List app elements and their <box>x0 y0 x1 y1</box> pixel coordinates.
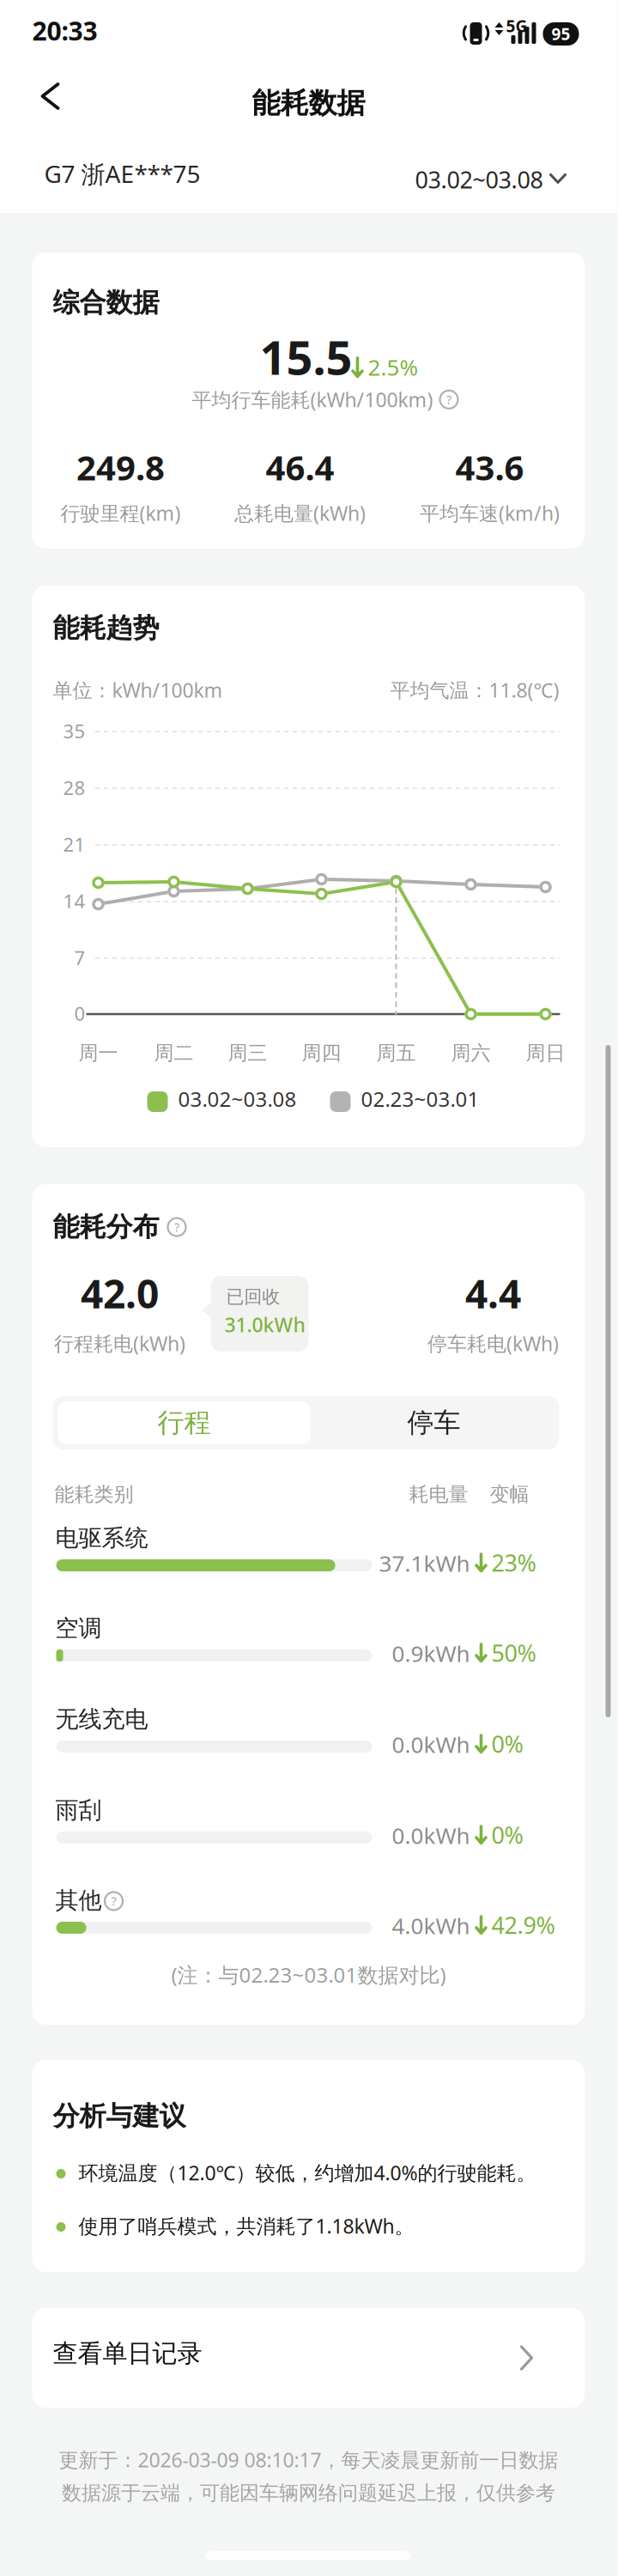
button[interactable]: 停车 <box>312 1401 556 1444</box>
staticText: 5G <box>506 15 527 37</box>
staticText: 20:33 <box>32 14 97 48</box>
staticText: 其他 <box>55 1886 102 1915</box>
staticText: 周三 <box>228 1041 267 1065</box>
staticText: 停车 <box>407 1406 460 1439</box>
staticText: 50% <box>491 1637 536 1668</box>
staticText: 4.4 <box>465 1267 521 1319</box>
staticText: 43.6 <box>455 444 524 490</box>
staticText: 15.5 <box>260 326 352 388</box>
staticText: 37.1kWh <box>379 1548 470 1578</box>
staticText: 数据源于云端，可能因车辆网络问题延迟上报，仅供参考 <box>62 2481 555 2505</box>
staticText: 环境温度（12.0℃）较低，约增加4.0%的行驶能耗。 <box>79 2160 536 2186</box>
staticText: 249.8 <box>76 444 165 490</box>
staticText: 23% <box>491 1547 536 1578</box>
button[interactable]: 03.02~03.08 <box>410 157 571 202</box>
staticText: ? <box>446 392 451 407</box>
staticText: 周日 <box>526 1041 565 1065</box>
staticText: 周二 <box>154 1041 194 1065</box>
staticText: 0% <box>491 1728 523 1759</box>
staticText: 行驶里程(km) <box>61 500 181 526</box>
staticText: 28 <box>63 775 85 800</box>
staticText: 使用了哨兵模式，共消耗了1.18kWh。 <box>79 2213 414 2239</box>
staticText: G7 浙AE***75 <box>44 158 200 190</box>
staticText: 平均行车能耗(kWh/100km) <box>192 386 433 413</box>
staticText: 02.23~03.01 <box>361 1085 479 1113</box>
staticText: ? <box>174 1219 179 1235</box>
staticText: 平均车速(km/h) <box>420 500 560 526</box>
staticText: 0.9kWh <box>392 1639 470 1668</box>
button[interactable]: 查看单日记录 <box>32 2308 585 2408</box>
staticText: 2.5% <box>368 352 418 382</box>
staticText: 03.02~03.08 <box>178 1085 297 1113</box>
button[interactable]: 返回 <box>18 74 77 120</box>
staticText: ? <box>111 1893 116 1909</box>
staticText: 雨刮 <box>55 1796 102 1825</box>
staticText: 总耗电量(kWh) <box>234 500 366 526</box>
staticText: 0% <box>491 1819 523 1850</box>
staticText: 行程 <box>158 1406 211 1439</box>
staticText: 7 <box>74 945 85 970</box>
staticText: 电驱系统 <box>55 1524 148 1552</box>
button[interactable]: 行程 <box>58 1401 310 1444</box>
staticText: 95 <box>551 23 570 45</box>
staticText: 4.0kWh <box>392 1911 470 1940</box>
staticText: 35 <box>63 718 85 743</box>
staticText: 0.0kWh <box>392 1730 470 1759</box>
staticText: 0 <box>74 1001 85 1026</box>
staticText: 行程耗电(kWh) <box>54 1330 185 1356</box>
staticText: 能耗分布 <box>53 1211 159 1243</box>
staticText: 42.0 <box>81 1267 159 1319</box>
staticText: 停车耗电(kWh) <box>427 1330 559 1356</box>
staticText: 21 <box>63 832 85 857</box>
staticText: 周五 <box>376 1041 416 1065</box>
staticText: 耗电量 <box>409 1482 468 1507</box>
staticText: 31.0kWh <box>224 1311 305 1338</box>
staticText: 03.02~03.08 <box>415 164 543 195</box>
staticText: 综合数据 <box>53 286 159 319</box>
staticText: 14 <box>63 888 85 913</box>
staticText: 变幅 <box>490 1482 529 1507</box>
button[interactable]: 帮助 <box>168 1218 186 1236</box>
staticText: 46.4 <box>266 444 334 490</box>
staticText: 平均气温：11.8(℃) <box>390 677 559 703</box>
staticText: 分析与建议 <box>53 2100 186 2132</box>
staticText: 能耗趋势 <box>53 612 159 644</box>
staticText: 查看单日记录 <box>53 2338 202 2369</box>
staticText: 周六 <box>451 1041 491 1065</box>
staticText: 能耗数据 <box>252 86 365 121</box>
staticText: 已回收 <box>226 1286 280 1308</box>
staticText: 0.0kWh <box>392 1821 470 1850</box>
staticText: 更新于：2026-03-09 08:10:17，每天凌晨更新前一日数据 <box>59 2447 558 2473</box>
staticText: 周一 <box>79 1041 118 1065</box>
staticText: 无线充电 <box>55 1705 148 1734</box>
staticText: 周四 <box>302 1041 341 1065</box>
button[interactable]: 帮助 <box>440 391 458 409</box>
staticText: 能耗类别 <box>55 1482 133 1507</box>
staticText: 42.9% <box>491 1910 555 1940</box>
staticText: 空调 <box>55 1614 102 1643</box>
staticText: (注：与02.23~03.01数据对比) <box>171 1961 446 1988</box>
staticText: 单位：kWh/100km <box>53 677 223 703</box>
button[interactable]: 帮助 <box>105 1892 123 1910</box>
